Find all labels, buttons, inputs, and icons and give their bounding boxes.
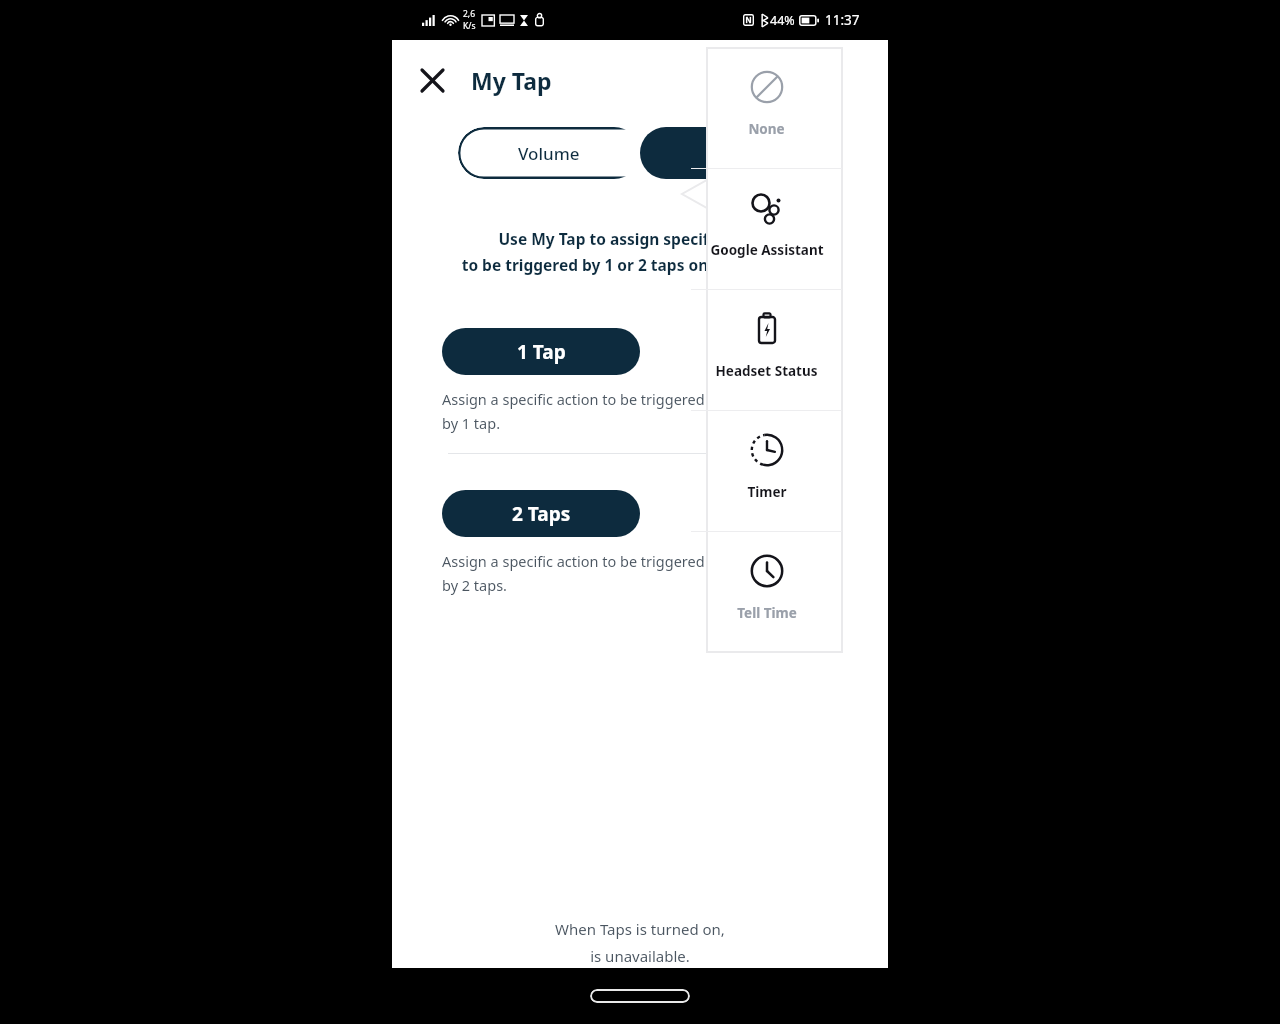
staticText: Headset Status	[715, 362, 818, 380]
staticText: Google Assistant	[710, 241, 824, 259]
button[interactable]: Close	[410, 58, 454, 102]
button[interactable]: 1 Tap	[442, 328, 640, 375]
staticText: K/s	[463, 20, 476, 32]
staticText: Volume	[518, 142, 580, 165]
button[interactable]: 2 Taps	[442, 490, 640, 537]
staticText: Assign a specific action to be triggered…	[442, 389, 705, 433]
staticText: When Taps is turned on, is unavailable.	[392, 919, 888, 967]
button[interactable]: Home	[590, 989, 690, 1003]
staticText: 2,6	[463, 8, 476, 20]
staticText: 11:37	[825, 11, 860, 29]
button[interactable]: Timer	[691, 411, 842, 531]
button[interactable]: Tell Time	[691, 532, 842, 652]
staticText: Tell Time	[737, 604, 797, 622]
button[interactable]: Taps	[640, 127, 822, 179]
button[interactable]: None	[691, 48, 842, 168]
staticText: 44%	[770, 12, 795, 29]
staticText: None	[748, 120, 785, 138]
button[interactable]: Google Assistant	[691, 169, 842, 289]
staticText: My Tap	[471, 65, 552, 96]
staticText: 2 Taps	[512, 501, 571, 527]
staticText: Assign a specific action to be triggered…	[442, 551, 705, 595]
staticText: Timer	[747, 483, 787, 501]
button[interactable]: Volume	[458, 127, 640, 179]
button[interactable]: Headset Status	[691, 290, 842, 410]
staticText: 1 Tap	[517, 339, 566, 365]
staticText: Use My Tap to assign specific actions to…	[392, 228, 888, 276]
